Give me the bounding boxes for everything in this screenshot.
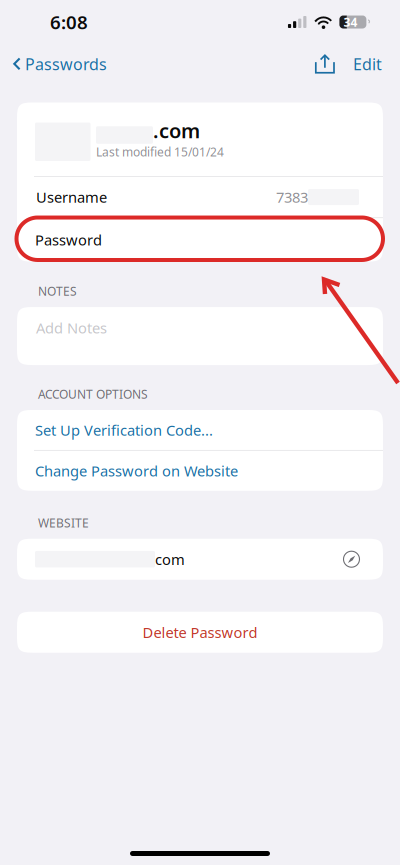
staticText: Edit — [353, 53, 382, 75]
staticText: ACCOUNT OPTIONS — [38, 386, 148, 402]
staticText: Set Up Verification Code... — [35, 420, 213, 440]
staticText: 7383 — [276, 187, 308, 207]
button[interactable]: Password — [17, 218, 383, 262]
staticText: 34 — [343, 14, 357, 30]
staticText: Password — [35, 230, 102, 250]
staticText: Change Password on Website — [35, 461, 238, 480]
button[interactable]: Delete Password — [17, 612, 383, 653]
staticText: NOTES — [38, 283, 77, 299]
staticText: Passwords — [25, 53, 107, 75]
button[interactable]: Passwords — [0, 46, 115, 82]
staticText: Delete Password — [142, 622, 257, 642]
staticText: Last modified 15/01/24 — [96, 144, 224, 160]
staticText: 6:08 — [50, 10, 88, 34]
staticText: Username — [36, 187, 107, 207]
button[interactable]: Share — [289, 50, 343, 78]
staticText: WEBSITE — [38, 515, 89, 531]
button[interactable]: Edit — [343, 46, 400, 82]
button[interactable]: com — [17, 539, 383, 580]
staticText: Add Notes — [36, 318, 107, 337]
staticText: .com — [153, 117, 200, 144]
button[interactable]: Set Up Verification Code... — [17, 410, 383, 450]
button[interactable]: Change Password on Website — [17, 451, 383, 491]
staticText: com — [155, 549, 185, 569]
button[interactable]: Username — [17, 177, 383, 217]
